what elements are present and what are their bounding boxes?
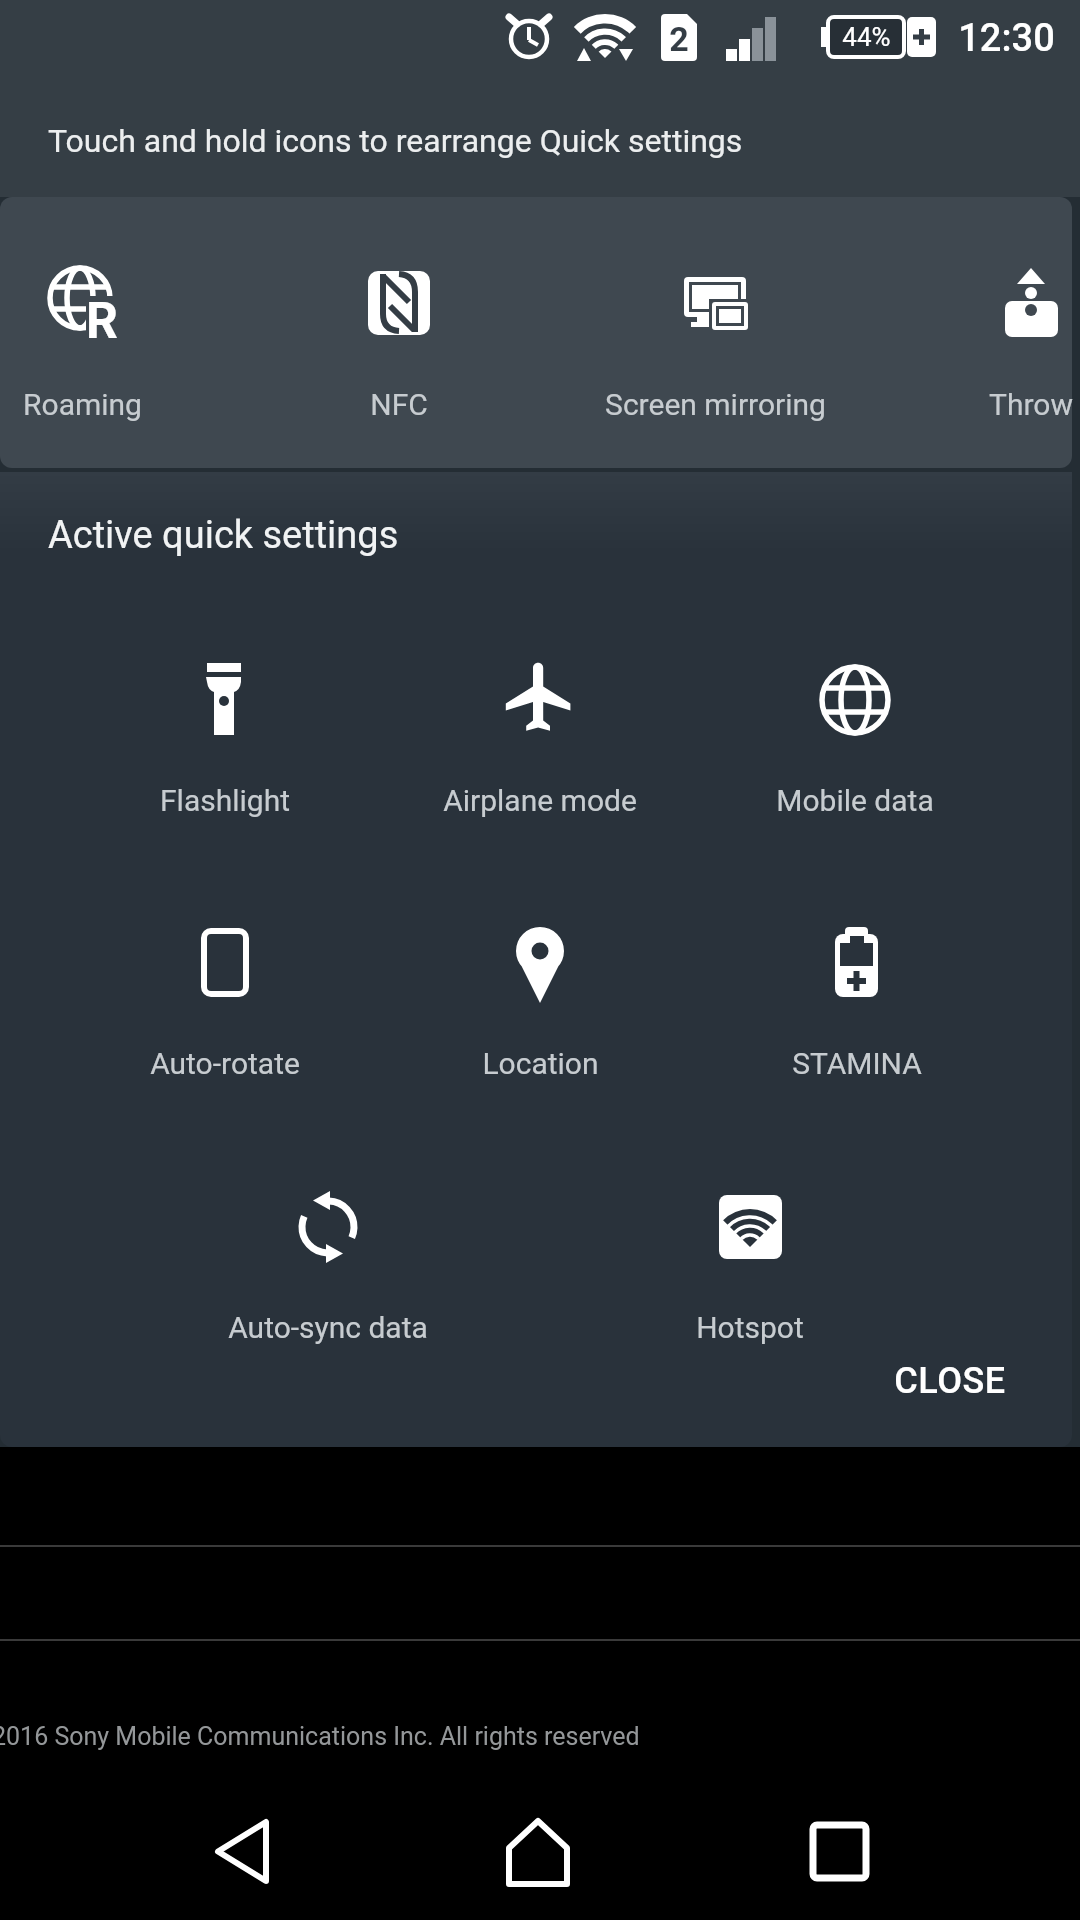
staticText: Airplane mode: [443, 783, 637, 818]
button[interactable]: [318, 240, 478, 450]
staticText: Hotspot: [696, 1310, 804, 1345]
staticText: Touch and hold icons to rearrange Quick …: [48, 122, 743, 160]
button[interactable]: [115, 905, 335, 1105]
staticText: 2: [669, 19, 689, 59]
staticText: 12:30: [958, 16, 1055, 61]
button[interactable]: [745, 905, 965, 1105]
staticText: NFC: [370, 387, 428, 422]
staticText: 2016 Sony Mobile Communications Inc. All…: [0, 1722, 640, 1751]
staticText: Roaming: [23, 387, 142, 422]
staticText: Location: [482, 1046, 599, 1081]
button[interactable]: [430, 640, 650, 840]
staticText: Auto-sync data: [228, 1310, 428, 1345]
button[interactable]: CLOSE: [850, 1358, 1050, 1404]
staticText: Auto-rotate: [150, 1046, 300, 1081]
button[interactable]: [160, 1790, 380, 1910]
staticText: Screen mirroring: [605, 387, 826, 422]
staticText: Throw: [989, 387, 1073, 422]
staticText: R: [86, 292, 118, 344]
staticText: Mobile data: [776, 783, 934, 818]
button[interactable]: [218, 1170, 438, 1370]
button[interactable]: [430, 1790, 650, 1910]
staticText: CLOSE: [894, 1360, 1006, 1402]
staticText: Active quick settings: [48, 513, 399, 558]
button[interactable]: [115, 640, 335, 840]
button[interactable]: [640, 1170, 860, 1370]
staticText: Flashlight: [160, 783, 290, 818]
button[interactable]: [2, 240, 162, 450]
button[interactable]: [635, 240, 795, 450]
button[interactable]: [745, 640, 965, 840]
button[interactable]: [951, 240, 1080, 450]
button[interactable]: [700, 1790, 920, 1910]
staticText: STAMINA: [792, 1046, 922, 1081]
button[interactable]: [430, 905, 650, 1105]
staticText: 44%: [842, 22, 891, 52]
